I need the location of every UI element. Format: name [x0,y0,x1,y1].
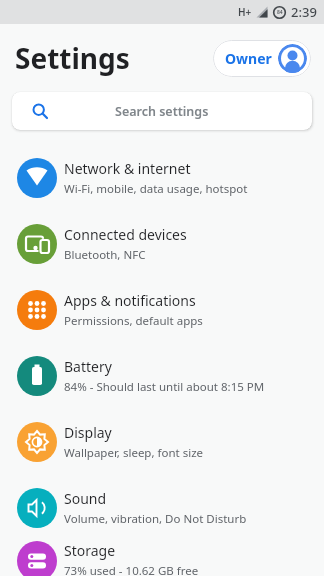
staticText: Wallpaper, sleep, font size [64,445,204,461]
staticText: Volume, vibration, Do Not Disturb [64,511,247,527]
staticText: 2:39 [291,3,317,21]
button[interactable]: Connected devices [0,211,324,277]
button[interactable]: Apps & notifications [0,277,324,343]
staticText: Settings [15,39,130,77]
button[interactable]: Sound [0,475,324,541]
staticText: H+ [238,5,252,19]
button[interactable]: Battery [0,343,324,409]
button[interactable]: Search settings [12,92,312,130]
staticText: Wi-Fi, mobile, data usage, hotspot [64,181,248,197]
staticText: Search settings [115,103,209,120]
staticText: Apps & notifications [64,291,196,310]
button[interactable]: Network & internet [0,145,324,211]
staticText: Connected devices [64,225,187,244]
button[interactable]: Storage [0,541,324,576]
staticText: Permissions, default apps [64,313,203,329]
staticText: 84 [277,9,283,16]
staticText: Display [64,423,112,442]
staticText: Owner [225,49,272,68]
staticText: Network & internet [64,159,191,178]
button[interactable]: Owner [213,40,311,77]
staticText: Storage [64,541,116,560]
button[interactable]: Display [0,409,324,475]
staticText: 73% used - 10.62 GB free [64,563,199,576]
staticText: Battery [64,357,112,376]
staticText: Sound [64,489,107,508]
staticText: 84% - Should last until about 8:15 PM [64,379,265,395]
staticText: Bluetooth, NFC [64,247,146,263]
